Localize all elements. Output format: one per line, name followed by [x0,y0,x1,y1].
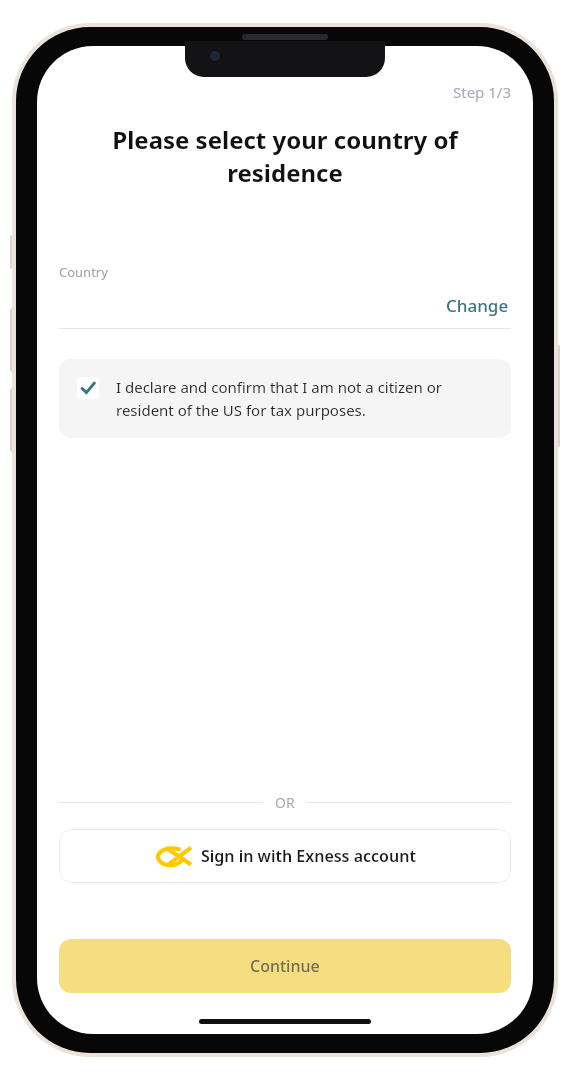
button[interactable]: Change [444,292,511,319]
staticText: Step 1/3 [453,82,511,102]
staticText: Please select your country of residence [71,123,499,189]
staticText: Country [59,263,108,281]
button[interactable]: Continue [59,939,511,993]
staticText: I declare and confirm that I am not a ci… [116,377,491,420]
staticText: Sign in with Exness account [201,845,416,867]
button[interactable]: I declare and confirm that I am not a ci… [59,359,511,438]
staticText: Change [446,294,509,317]
button[interactable]: Exness logo [59,829,511,883]
other: Exness logo [155,846,191,866]
staticText: Continue [250,955,320,977]
staticText: OR [275,793,295,812]
